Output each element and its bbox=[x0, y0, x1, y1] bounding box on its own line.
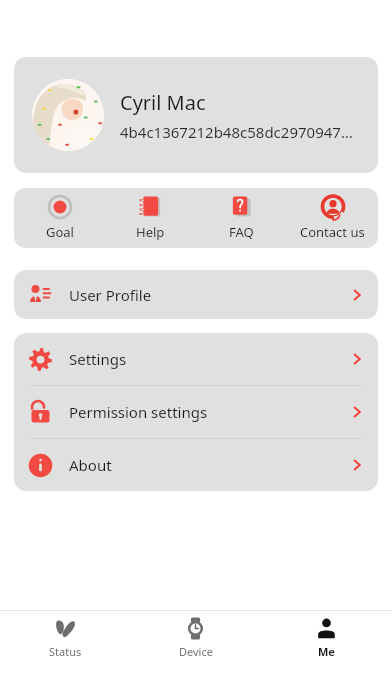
staticText: About bbox=[69, 455, 112, 475]
button[interactable]: Me bbox=[261, 611, 392, 669]
staticText: Settings bbox=[69, 349, 127, 369]
staticText: Me bbox=[318, 644, 335, 659]
staticText: Contact us bbox=[300, 223, 365, 241]
button[interactable]: Settings bbox=[14, 333, 378, 385]
button[interactable]: About bbox=[14, 439, 378, 491]
button[interactable]: Status bbox=[0, 611, 130, 669]
staticText: Goal bbox=[46, 223, 74, 241]
staticText: 4b4c1367212b48c58dc2970947b... bbox=[120, 122, 360, 142]
staticText: FAQ bbox=[229, 223, 254, 241]
staticText: User Profile bbox=[69, 285, 152, 305]
staticText: Permission settings bbox=[69, 402, 208, 422]
button[interactable]: FAQ bbox=[196, 188, 287, 248]
button[interactable]: Cyril Mac bbox=[14, 57, 378, 173]
staticText: Help bbox=[136, 223, 165, 241]
staticText: Device bbox=[179, 644, 213, 659]
button[interactable]: Device bbox=[130, 611, 261, 669]
button[interactable]: User Profile bbox=[14, 270, 378, 319]
staticText: Status bbox=[49, 644, 82, 659]
button[interactable]: Permission settings bbox=[14, 386, 378, 438]
staticText: Cyril Mac bbox=[120, 89, 206, 116]
button[interactable]: Contact us bbox=[287, 188, 378, 248]
button[interactable]: Goal bbox=[14, 188, 105, 248]
button[interactable]: Help bbox=[105, 188, 196, 248]
